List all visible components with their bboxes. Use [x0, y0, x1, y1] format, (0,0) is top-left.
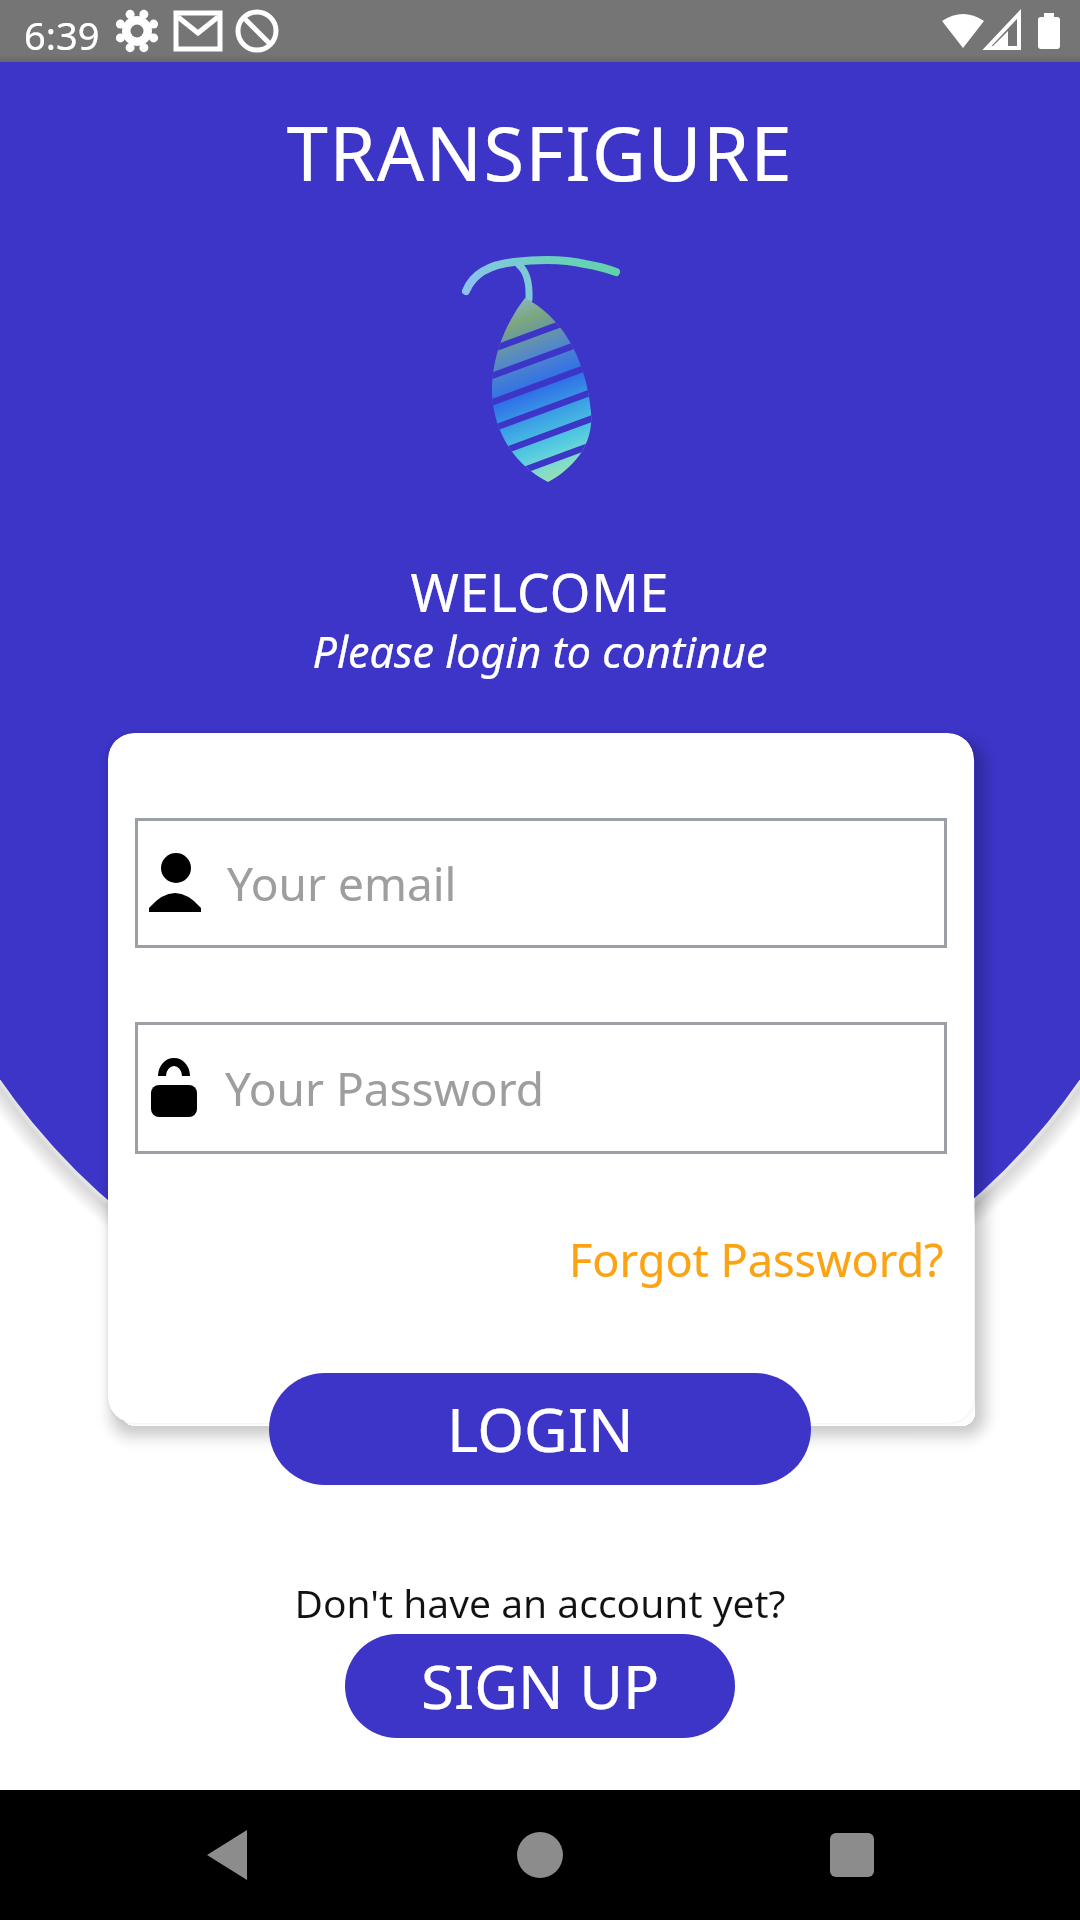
staticText: Please login to continue — [0, 622, 1080, 681]
staticText: Don't have an account yet? — [0, 1576, 1080, 1629]
button[interactable] — [0, 1790, 360, 1920]
staticText: LOGIN — [447, 1388, 634, 1470]
button[interactable]: LOGIN — [269, 1373, 811, 1485]
staticText: TRANSFIGURE — [0, 102, 1080, 203]
button[interactable]: SIGN UP — [345, 1634, 735, 1738]
button[interactable] — [360, 1790, 720, 1920]
button[interactable]: Your Password — [135, 1022, 947, 1154]
staticText: Your email — [227, 852, 457, 915]
button[interactable]: Forgot Password? — [569, 1229, 944, 1290]
staticText: WELCOME — [0, 556, 1080, 627]
button[interactable] — [720, 1790, 1080, 1920]
staticText: SIGN UP — [421, 1645, 660, 1727]
button[interactable]: Your email — [135, 818, 947, 948]
staticText: Your Password — [225, 1057, 545, 1120]
staticText: 6:39 — [24, 9, 100, 61]
